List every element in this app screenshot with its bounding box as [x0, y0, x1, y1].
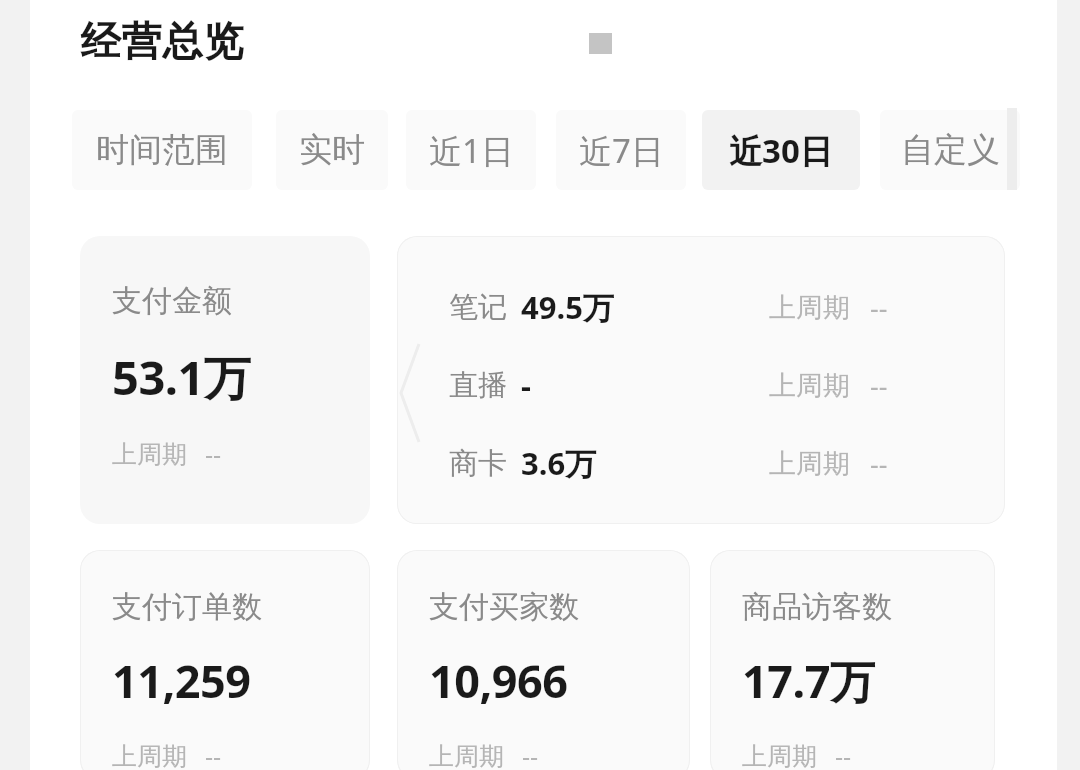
- button[interactable]: 商品访客数: [710, 550, 995, 770]
- staticText: 直播: [449, 367, 507, 404]
- staticText: --: [870, 445, 888, 482]
- staticText: 53.1万: [112, 345, 251, 409]
- staticText: 上周期: [112, 741, 187, 770]
- staticText: 商品访客数: [742, 588, 892, 626]
- staticText: -: [521, 364, 531, 406]
- button[interactable]: 近30日: [702, 110, 860, 190]
- staticText: 上周期: [769, 369, 850, 403]
- staticText: 近7日: [579, 128, 664, 173]
- staticText: 17.7万: [742, 650, 875, 711]
- staticText: 支付金额: [112, 282, 232, 320]
- staticText: 上周期: [112, 439, 187, 470]
- button[interactable]: 近7日: [556, 110, 686, 190]
- staticText: 经营总览: [80, 16, 244, 66]
- staticText: 近30日: [729, 128, 833, 173]
- button[interactable]: 支付订单数: [80, 550, 370, 770]
- button[interactable]: 实时: [276, 110, 388, 190]
- staticText: --: [205, 437, 222, 471]
- staticText: 上周期: [769, 447, 850, 481]
- staticText: --: [870, 367, 888, 404]
- staticText: 近1日: [429, 128, 514, 173]
- button[interactable]: 支付买家数: [397, 550, 690, 770]
- staticText: 49.5万: [521, 286, 614, 328]
- staticText: 支付买家数: [429, 588, 579, 626]
- staticText: 自定义: [901, 129, 1000, 171]
- staticText: 上周期: [769, 291, 850, 325]
- staticText: --: [205, 739, 222, 770]
- button[interactable]: 自定义: [880, 110, 1020, 190]
- button[interactable]: 近1日: [406, 110, 536, 190]
- staticText: 3.6万: [521, 442, 597, 484]
- staticText: 10,966: [429, 650, 568, 711]
- staticText: 时间范围: [96, 129, 228, 171]
- staticText: 11,259: [112, 650, 251, 711]
- button[interactable]: 笔记: [397, 236, 1005, 524]
- button[interactable]: 时间范围: [72, 110, 252, 190]
- button[interactable]: 支付金额: [80, 236, 370, 524]
- staticText: 商卡: [449, 445, 507, 482]
- staticText: 上周期: [742, 741, 817, 770]
- staticText: --: [870, 289, 888, 326]
- staticText: 支付订单数: [112, 588, 262, 626]
- staticText: --: [835, 739, 852, 770]
- staticText: 实时: [299, 129, 365, 171]
- staticText: 上周期: [429, 741, 504, 770]
- staticText: --: [522, 739, 539, 770]
- staticText: 笔记: [449, 289, 507, 326]
